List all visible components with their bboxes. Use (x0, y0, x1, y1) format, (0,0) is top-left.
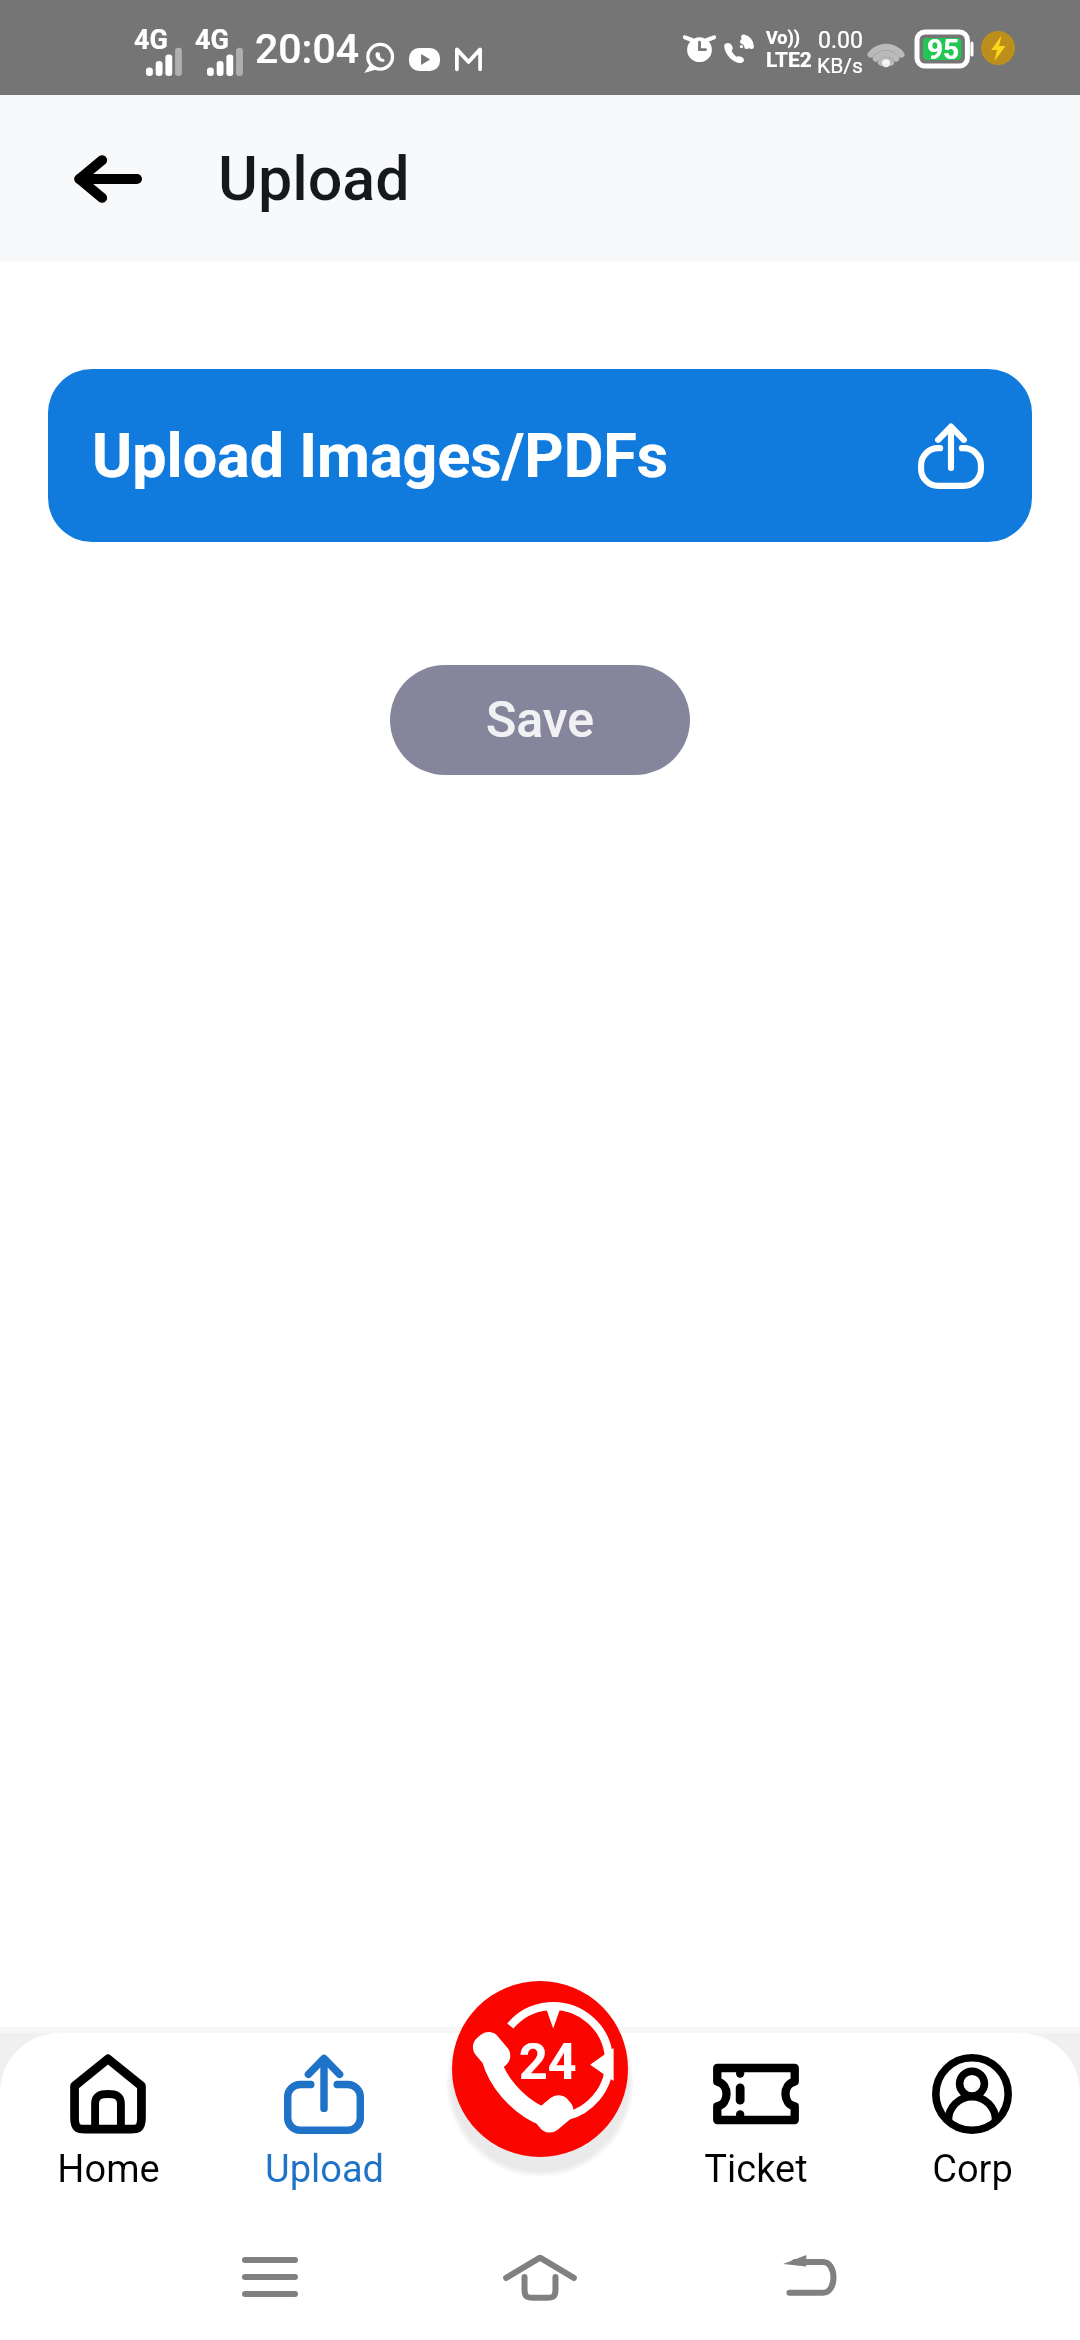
button[interactable]: Corp (864, 2033, 1080, 2203)
button[interactable]: Recents (210, 2247, 330, 2307)
staticText: Save (486, 691, 595, 750)
staticText: Ticket (704, 2147, 808, 2192)
staticText: 95 (927, 33, 960, 66)
button[interactable]: Upload (216, 2033, 432, 2203)
staticText: 4G (195, 24, 229, 56)
staticText: KB/s (817, 54, 863, 79)
staticText: 0.00 (818, 27, 863, 54)
button[interactable]: 24 hour call support (452, 1981, 628, 2157)
staticText: 20:04 (255, 25, 360, 73)
staticText: Home (57, 2147, 160, 2192)
staticText: Upload (265, 2147, 384, 2192)
button[interactable]: Back (48, 120, 166, 238)
button[interactable]: Save (390, 665, 690, 775)
staticText: 4G (134, 24, 168, 56)
button[interactable]: Home (0, 2033, 216, 2203)
button[interactable]: Back (750, 2247, 870, 2307)
staticText: Corp (932, 2147, 1013, 2192)
staticText: LTE2 (766, 48, 812, 73)
staticText: Upload Images/PDFs (92, 420, 669, 491)
staticText: Upload (218, 143, 410, 214)
staticText: Vo)) (766, 27, 801, 48)
button[interactable]: Home (480, 2247, 600, 2307)
button[interactable]: Ticket (648, 2033, 864, 2203)
staticText: 24 (519, 2033, 577, 2092)
button[interactable]: Upload Images/PDFs (48, 369, 1032, 542)
